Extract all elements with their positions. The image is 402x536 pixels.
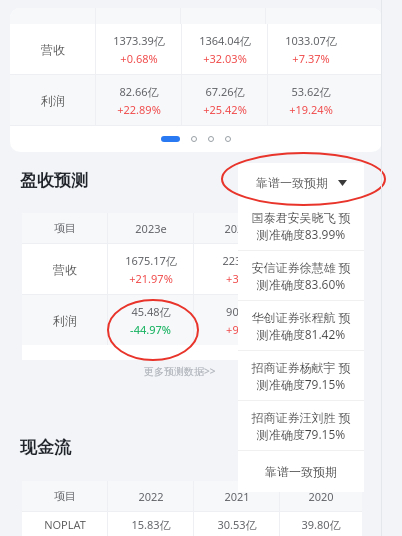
- staticText: 项目: [54, 221, 76, 235]
- staticText: 45.48亿: [131, 304, 171, 319]
- staticText: 招商证券汪刘胜 预 测准确度79.15%: [251, 409, 351, 443]
- staticText: 靠谱一致预期: [256, 175, 328, 190]
- button[interactable]: 靠谱一致预期: [238, 451, 364, 492]
- staticText: 2023e: [135, 221, 167, 236]
- staticText: 1373.39亿: [113, 33, 165, 48]
- staticText: +33.: [226, 271, 248, 286]
- staticText: 现金流: [20, 437, 71, 458]
- staticText: 靠谱一致预期: [265, 464, 337, 479]
- staticText: 15.83亿: [131, 517, 171, 532]
- staticText: 67.26亿: [205, 84, 245, 99]
- staticText: 1364.04亿: [199, 33, 251, 48]
- staticText: 30.53亿: [217, 517, 257, 532]
- staticText: +19.24%: [289, 102, 333, 117]
- staticText: 2024: [224, 221, 250, 236]
- staticText: 82.66亿: [119, 84, 159, 99]
- staticText: +25.42%: [203, 102, 247, 117]
- staticText: +32.03%: [203, 51, 247, 66]
- staticText: 更多预测数据>>: [144, 364, 216, 378]
- staticText: 2230.: [222, 253, 251, 268]
- staticText: 2022: [138, 489, 164, 504]
- button[interactable]: 安信证券徐慧雄 预 测准确度83.60%: [238, 251, 364, 300]
- staticText: 招商证券杨献宇 预 测准确度79.15%: [251, 359, 351, 393]
- staticText: 华创证券张程航 预 测准确度81.42%: [251, 309, 351, 343]
- staticText: +7.37%: [292, 51, 330, 66]
- staticText: 39.80亿: [301, 517, 341, 532]
- staticText: 安信证券徐慧雄 预 测准确度83.60%: [251, 259, 351, 293]
- staticText: +21.97%: [129, 271, 173, 286]
- staticText: NOPLAT: [44, 517, 86, 532]
- button[interactable]: 华创证券张程航 预 测准确度81.42%: [238, 301, 364, 350]
- button[interactable]: 招商证券汪刘胜 预 测准确度79.15%: [238, 401, 364, 450]
- button[interactable]: 招商证券杨献宇 预 测准确度79.15%: [238, 351, 364, 400]
- staticText: 53.62亿: [291, 84, 331, 99]
- staticText: 2021: [224, 489, 250, 504]
- button[interactable]: 靠谱一致预期: [238, 163, 364, 201]
- staticText: +22.89%: [117, 102, 161, 117]
- staticText: 营收: [41, 42, 65, 57]
- staticText: 国泰君安吴晓飞 预 测准确度83.99%: [251, 209, 351, 243]
- staticText: 利润: [41, 93, 65, 108]
- button[interactable]: 更多预测数据>>: [140, 362, 220, 380]
- staticText: 2020: [308, 489, 334, 504]
- staticText: -44.97%: [130, 322, 171, 337]
- staticText: 利润: [53, 313, 77, 328]
- staticText: 90.4: [226, 304, 248, 319]
- staticText: 1033.07亿: [285, 33, 337, 48]
- staticText: 2025: [308, 221, 334, 236]
- staticText: +98.: [226, 322, 248, 337]
- button[interactable]: 国泰君安吴晓飞 预 测准确度83.99%: [238, 201, 364, 250]
- staticText: 1675.17亿: [125, 253, 177, 268]
- staticText: 盈收预测: [20, 170, 88, 191]
- staticText: 营收: [53, 262, 77, 277]
- staticText: +0.68%: [120, 51, 158, 66]
- staticText: 项目: [54, 489, 76, 503]
